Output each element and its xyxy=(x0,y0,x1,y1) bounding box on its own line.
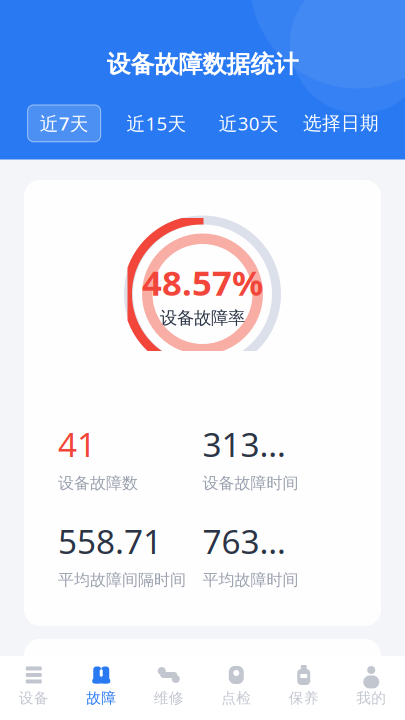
button[interactable]: 近30天 xyxy=(202,104,295,143)
button[interactable]: 故障 xyxy=(67,660,135,712)
button[interactable]: 近7天 xyxy=(18,105,110,142)
staticText: 设备故障数 xyxy=(58,473,138,493)
button[interactable]: 我的 xyxy=(337,660,405,712)
staticText: 48.57% xyxy=(142,259,263,305)
button[interactable]: 保养 xyxy=(270,660,337,712)
staticText: 选择日期 xyxy=(303,112,379,135)
staticText: 近7天 xyxy=(40,111,89,136)
staticText: 763… xyxy=(202,519,285,563)
staticText: 设备故障率趋势 xyxy=(68,659,208,683)
staticText: 点检 xyxy=(221,689,251,707)
staticText: 558.71 xyxy=(58,519,162,563)
button[interactable]: 选择日期 xyxy=(295,105,387,142)
staticText: 近15天 xyxy=(126,111,186,136)
staticText: 近30天 xyxy=(219,111,279,136)
staticText: 设备故障时间 xyxy=(202,473,298,493)
button[interactable]: 点检 xyxy=(202,660,270,712)
staticText: 保养 xyxy=(289,689,319,707)
button[interactable]: 设备 xyxy=(0,660,67,712)
button[interactable]: 维修 xyxy=(135,660,202,712)
staticText: 维修 xyxy=(154,689,184,707)
button[interactable]: 近15天 xyxy=(110,104,202,143)
staticText: 41 xyxy=(58,422,96,466)
staticText: 我的 xyxy=(356,689,386,707)
staticText: 设备 xyxy=(19,689,49,707)
staticText: 平均故障间隔时间 xyxy=(58,570,186,590)
staticText: 313… xyxy=(202,422,285,466)
staticText: 设备故障数据统计 xyxy=(106,49,298,79)
staticText: 平均故障时间 xyxy=(202,570,298,590)
staticText: 故障 xyxy=(86,689,116,707)
staticText: 设备故障率 xyxy=(160,307,245,329)
